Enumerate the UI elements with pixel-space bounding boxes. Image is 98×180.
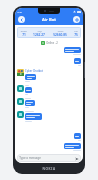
button[interactable] [64,47,81,53]
button[interactable] [25,87,32,93]
staticText: Cyber Chatbot [25,69,43,73]
button[interactable] [64,143,81,149]
staticText: 71 [22,33,26,37]
button[interactable]: Back [18,16,25,23]
button[interactable]: Temp [17,27,81,38]
button[interactable]: Bot avatar [17,111,24,118]
button[interactable]: Send [74,156,79,161]
staticText: Air Bot [42,17,56,23]
staticText: Type a message [19,156,41,160]
button[interactable]: Type a message [17,154,81,162]
staticText: CO [74,29,78,32]
button[interactable] [25,100,35,106]
button[interactable] [25,74,36,80]
staticText: 52660.85 [53,33,67,37]
staticText: TVOC [57,29,64,32]
button[interactable]: Bot avatar [17,98,24,105]
button[interactable]: Menu [73,16,80,23]
button[interactable] [25,113,42,120]
staticText: Online -2 [46,41,58,45]
staticText: 1:45 [17,10,22,13]
button[interactable] [74,58,81,64]
staticText: AQI [37,29,42,32]
button[interactable]: Bot avatar [17,85,24,92]
staticText: 1262.27 [33,33,45,37]
button[interactable] [74,133,81,139]
staticText: Temp [20,29,27,32]
staticText: NOKIA [42,167,56,171]
staticText: 75 [74,33,78,37]
